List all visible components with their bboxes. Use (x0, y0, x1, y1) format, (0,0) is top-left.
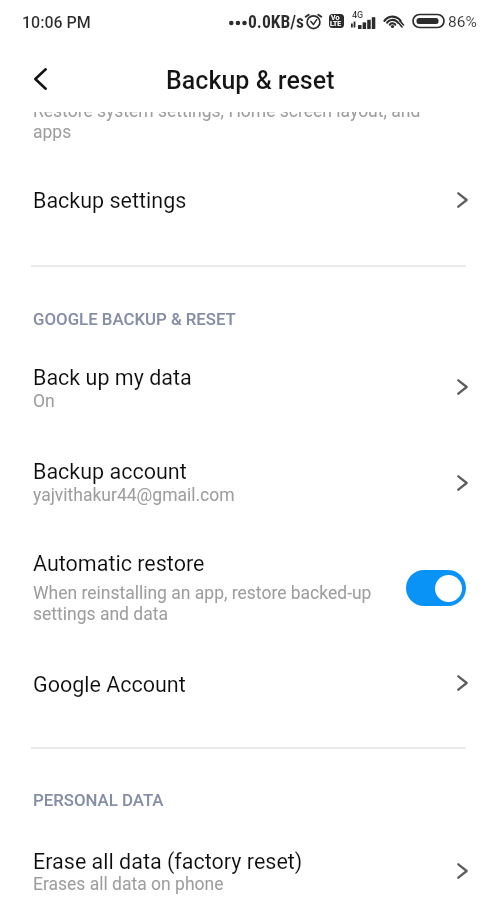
staticText: LTE (330, 20, 342, 28)
staticText: Google Account (33, 672, 186, 697)
staticText: 0.0KB/s (248, 12, 305, 33)
staticText: When reinstalling an app, restore backed… (33, 583, 378, 625)
staticText: Backup settings (33, 188, 187, 213)
button[interactable]: Automatic restore (0, 534, 500, 639)
staticText: Restore system settings, Home screen lay… (33, 112, 421, 141)
button[interactable]: Backup account (0, 442, 500, 514)
staticText: Back up my data (33, 365, 192, 390)
button[interactable]: Automatic restore (406, 570, 466, 606)
staticText: Backup account (33, 459, 187, 484)
staticText: Automatic restore (33, 551, 205, 576)
staticText: 10:06 PM (22, 13, 91, 32)
staticText: yajvithakur44@gmail.com (33, 485, 235, 506)
button[interactable]: Backup settings (0, 165, 500, 237)
staticText: Erases all data on phone (33, 874, 224, 895)
staticText: 4G (352, 10, 364, 21)
button[interactable]: Google Account (0, 650, 500, 714)
staticText: PERSONAL DATA (33, 790, 164, 810)
button[interactable]: Back up my data (0, 348, 500, 420)
staticText: On (33, 391, 55, 412)
staticText: GOOGLE BACKUP & RESET (33, 309, 236, 329)
staticText: Backup & reset (166, 66, 335, 95)
button[interactable]: Erase all data (factory reset) (0, 832, 500, 904)
button[interactable]: Restore system settings, Home screen lay… (0, 112, 500, 152)
staticText: Vo (331, 14, 340, 22)
staticText: 86% (448, 13, 477, 31)
staticText: Erase all data (factory reset) (33, 849, 303, 874)
button[interactable]: Back (17, 55, 64, 102)
